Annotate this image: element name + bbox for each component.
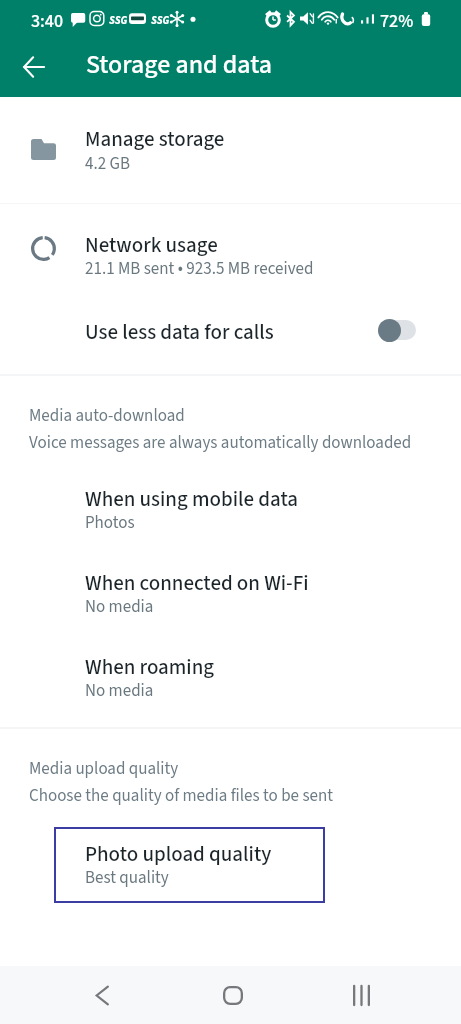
button[interactable]: Network usage [0, 204, 461, 300]
staticText: Media upload quality [29, 757, 179, 781]
button[interactable]: Back [78, 971, 126, 1019]
button[interactable]: When connected on Wi-Fi [0, 556, 461, 640]
staticText: Network usage [85, 230, 218, 260]
button[interactable]: Use less data for calls [0, 300, 461, 374]
staticText: No media [85, 679, 154, 703]
staticText: Photos [85, 511, 135, 535]
button[interactable]: Recent apps [337, 971, 385, 1019]
staticText: Photo upload quality [85, 839, 272, 869]
staticText: Choose the quality of media files to be … [29, 784, 334, 808]
staticText: Voice messages are always automatically … [29, 431, 412, 455]
button[interactable]: When using mobile data [0, 472, 461, 556]
button[interactable]: Manage storage [0, 98, 461, 203]
staticText: When using mobile data [85, 484, 299, 514]
button[interactable]: When roaming [0, 640, 461, 724]
button[interactable]: Back [11, 44, 57, 90]
staticText: When roaming [85, 652, 215, 682]
button[interactable]: Home [209, 971, 257, 1019]
staticText: Use less data for calls [85, 317, 274, 347]
staticText: 21.1 MB sent • 923.5 MB received [85, 257, 314, 281]
staticText: 4.2 GB [85, 152, 131, 176]
staticText: No media [85, 595, 154, 619]
staticText: Best quality [85, 866, 169, 890]
staticText: 72% [380, 9, 414, 35]
button[interactable]: Photo upload quality [54, 827, 325, 903]
staticText: Manage storage [85, 124, 225, 154]
staticText: SSG [151, 13, 170, 29]
staticText: Storage and data [86, 46, 272, 83]
staticText: 3:40 [31, 9, 63, 35]
staticText: Media auto-download [29, 404, 185, 428]
staticText: SSG [109, 13, 128, 29]
staticText: When connected on Wi-Fi [85, 568, 309, 598]
